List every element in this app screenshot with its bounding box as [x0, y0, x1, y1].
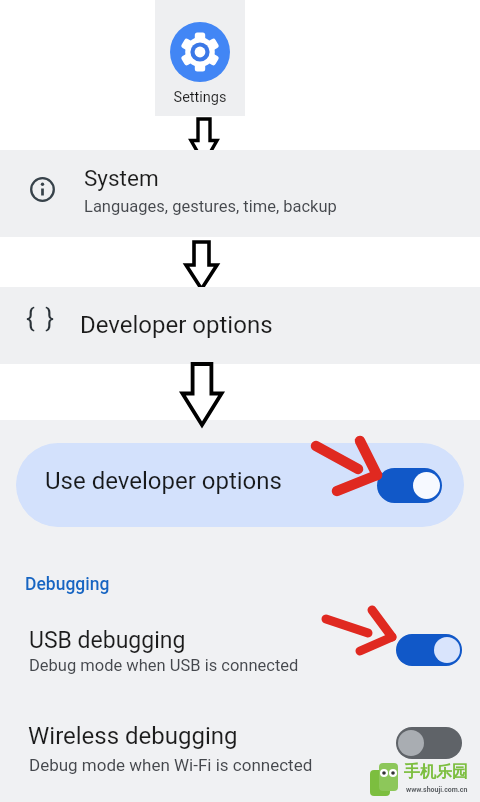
staticText: Use developer options — [45, 467, 282, 495]
staticText: 手机乐园 — [404, 762, 468, 782]
staticText: Wireless debugging — [28, 722, 238, 750]
button[interactable]: USB debugging — [0, 627, 480, 679]
button[interactable]: Debugging — [25, 574, 110, 595]
button[interactable]: 手机乐园 — [366, 760, 480, 802]
staticText: Developer options — [80, 311, 273, 339]
staticText: Debug mode when USB is connected — [29, 656, 299, 675]
button[interactable]: Use developer options — [16, 443, 464, 527]
staticText: Settings — [0, 89, 400, 106]
staticText: System — [84, 165, 159, 191]
staticText: Debug mode when Wi-Fi is connected — [29, 755, 313, 775]
staticText: www.shouji.com.cn — [406, 786, 468, 794]
button[interactable] — [155, 0, 245, 116]
staticText: Languages, gestures, time, backup — [84, 197, 337, 216]
staticText: USB debugging — [29, 627, 186, 654]
button[interactable]: Wireless debugging — [0, 722, 480, 777]
button[interactable]: System — [0, 150, 480, 237]
button[interactable]: { } — [0, 287, 480, 364]
staticText: { } — [26, 303, 57, 333]
